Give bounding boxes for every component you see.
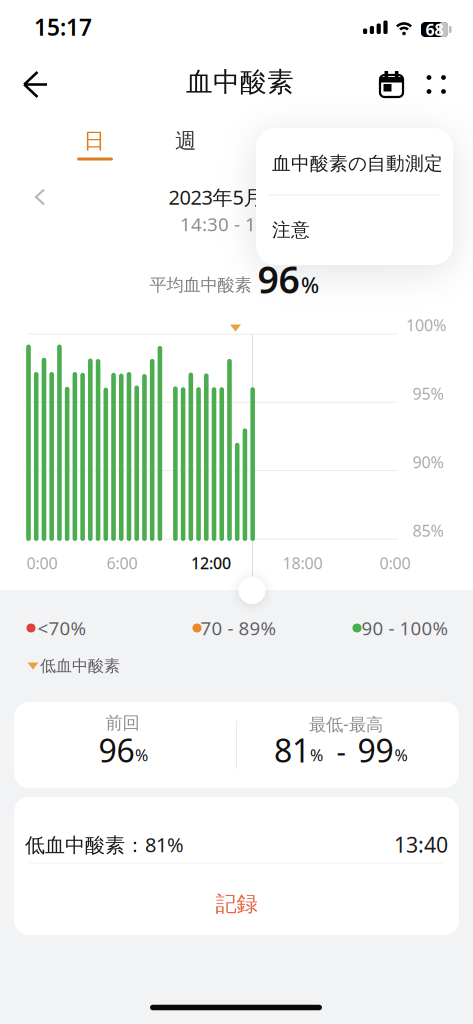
button[interactable]: 注意 xyxy=(256,197,453,263)
staticText: % xyxy=(135,744,148,766)
staticText: 68 xyxy=(425,19,443,40)
staticText: 100% xyxy=(406,314,446,336)
staticText: 81 xyxy=(274,729,310,771)
staticText: 血中酸素の自動測定 xyxy=(272,152,443,175)
staticText: 99 xyxy=(357,729,393,771)
staticText: 記録 xyxy=(215,891,257,917)
staticText: 2023年5月21日 xyxy=(168,184,305,210)
staticText: 96 xyxy=(257,254,299,304)
staticText: 95% xyxy=(412,383,443,404)
staticText: 70 - 89% xyxy=(200,616,276,640)
staticText: 週 xyxy=(175,128,196,154)
button[interactable]: その他 xyxy=(426,74,447,94)
staticText: 最低-最高 xyxy=(309,712,383,735)
button[interactable]: 週 xyxy=(155,126,215,156)
staticText: 日 xyxy=(83,128,104,154)
button[interactable]: 低血中酸素：81% xyxy=(14,804,459,869)
staticText: 0:00 xyxy=(379,552,410,574)
staticText: 低血中酸素 xyxy=(40,656,120,676)
staticText: 前回 xyxy=(105,712,139,734)
staticText: 14:30 - 15:17 xyxy=(180,212,294,236)
staticText: % xyxy=(301,271,319,299)
staticText: 平均血中酸素 xyxy=(149,274,251,296)
button[interactable]: 12:00 xyxy=(183,550,239,576)
staticText: 血中酸素 xyxy=(186,66,294,98)
button[interactable]: 前の日 xyxy=(34,188,45,205)
staticText: 85% xyxy=(412,520,443,541)
button[interactable]: カレンダー xyxy=(379,71,404,97)
staticText: % xyxy=(310,744,323,766)
staticText: 注意 xyxy=(272,218,310,241)
button[interactable]: 戻る xyxy=(23,71,49,98)
staticText: 0:00 xyxy=(26,552,57,574)
staticText: 96 xyxy=(98,729,134,771)
staticText: 低血中酸素：81% xyxy=(25,831,184,858)
staticText: 12:00 xyxy=(191,552,231,574)
staticText: 18:00 xyxy=(282,552,322,574)
staticText: - xyxy=(336,731,345,770)
staticText: 90% xyxy=(412,451,443,473)
staticText: % xyxy=(394,744,407,766)
button[interactable]: 血中酸素の自動測定 xyxy=(256,130,453,196)
button[interactable]: 日 xyxy=(64,126,124,156)
staticText: 13:40 xyxy=(394,830,448,859)
staticText: 6:00 xyxy=(106,552,137,574)
staticText: 90 - 100% xyxy=(361,616,448,640)
button[interactable]: 記録 xyxy=(14,869,459,939)
staticText: 15:17 xyxy=(34,12,92,42)
staticText: <70% xyxy=(37,616,86,640)
